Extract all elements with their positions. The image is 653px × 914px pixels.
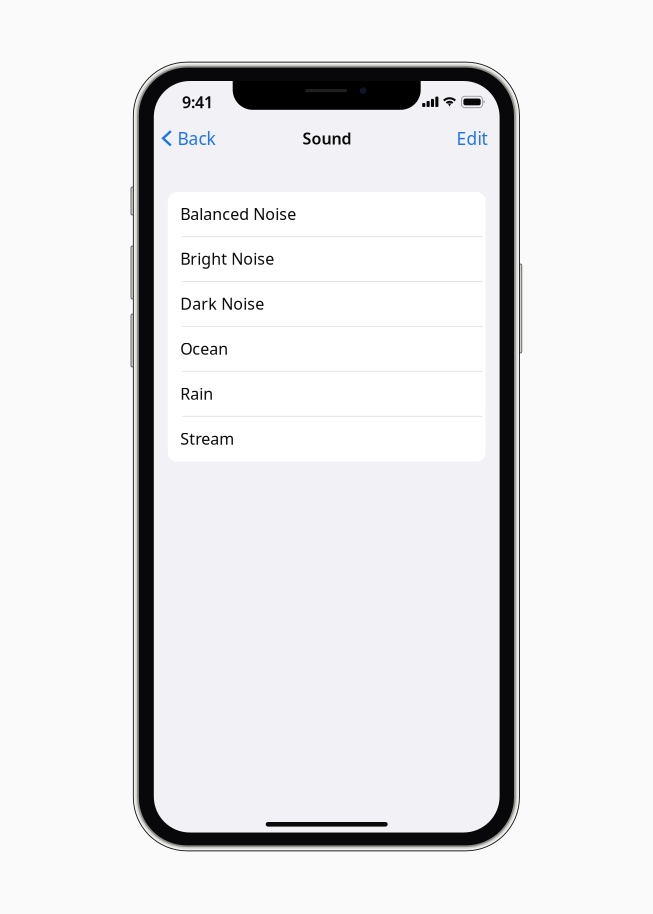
staticText: Sound bbox=[303, 128, 352, 149]
staticText: Back bbox=[178, 127, 216, 150]
staticText: Dark Noise bbox=[180, 293, 264, 314]
staticText: Rain bbox=[180, 383, 213, 404]
staticText: Edit bbox=[457, 127, 488, 150]
staticText: Stream bbox=[180, 428, 234, 449]
button[interactable]: Bright Noise bbox=[168, 237, 486, 282]
button[interactable]: Back bbox=[155, 120, 223, 157]
button[interactable]: Stream bbox=[168, 417, 486, 462]
staticText: Ocean bbox=[180, 338, 228, 359]
staticText: 9:41 bbox=[182, 91, 213, 113]
button[interactable]: Dark Noise bbox=[168, 282, 486, 327]
staticText: Balanced Noise bbox=[180, 203, 296, 224]
staticText: Bright Noise bbox=[180, 248, 274, 269]
button[interactable]: Ocean bbox=[168, 327, 486, 372]
button[interactable]: Rain bbox=[168, 372, 486, 417]
button[interactable]: Balanced Noise bbox=[168, 192, 486, 237]
button[interactable]: Edit bbox=[448, 120, 497, 157]
